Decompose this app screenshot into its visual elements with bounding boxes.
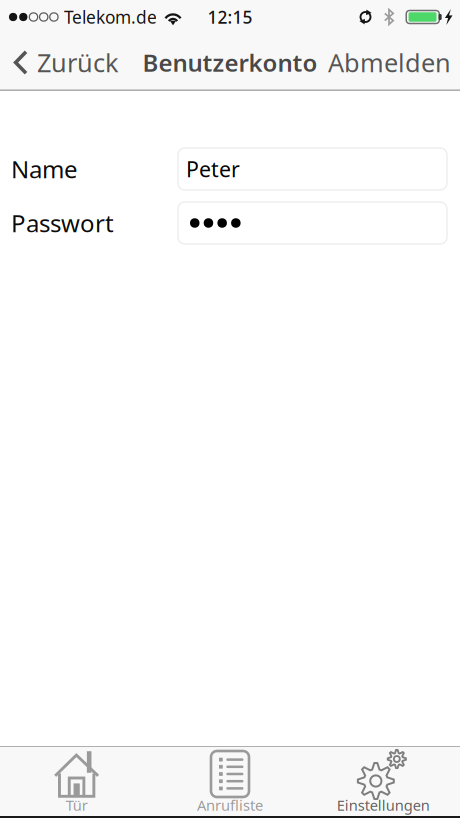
staticText: Name [11,153,78,185]
staticText: Peter [186,155,240,183]
staticText: Anrufliste [197,795,263,815]
button[interactable]: Zurück [0,34,129,91]
staticText: Telekom.de [64,5,157,28]
staticText: Abmelden [328,46,451,79]
button[interactable]: Abmelden [318,34,460,91]
staticText: Zurück [37,46,119,79]
staticText: 12:15 [207,5,252,28]
staticText: Passwort [11,207,114,239]
staticText: Tür [66,795,88,815]
staticText: Einstellungen [337,795,430,815]
button[interactable]: Anrufliste [153,746,307,818]
staticText: Benutzerkonto [142,47,317,78]
button[interactable]: Einstellungen [307,746,460,818]
button[interactable]: Tür [0,746,153,818]
